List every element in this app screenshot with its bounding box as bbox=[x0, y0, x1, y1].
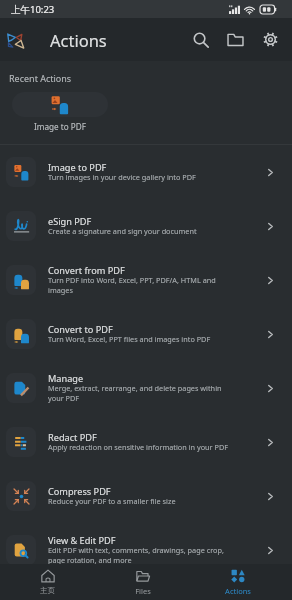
button[interactable]: Settings bbox=[253, 22, 288, 57]
staticText: Redact PDF bbox=[48, 431, 97, 444]
button[interactable]: Actions bbox=[190, 564, 285, 600]
staticText: 上午10:23 bbox=[11, 3, 55, 16]
staticText: View & Edit PDF bbox=[48, 534, 116, 547]
staticText: Image to PDF bbox=[48, 161, 107, 174]
button[interactable]: eSign PDF bbox=[0, 199, 292, 253]
staticText: Reduce your PDF to a smaller file size bbox=[48, 496, 176, 506]
button[interactable]: Manage bbox=[0, 361, 292, 415]
staticText: Image to PDF bbox=[34, 121, 87, 132]
button[interactable]: Convert to PDF bbox=[0, 307, 292, 361]
button[interactable]: Image to PDF bbox=[12, 92, 108, 132]
staticText: Files bbox=[135, 586, 151, 596]
button[interactable]: Adobe Acrobat home bbox=[3, 27, 29, 53]
button[interactable]: Search bbox=[183, 22, 218, 57]
staticText: Turn PDF into Word, Excel, PPT, PDF/A, H… bbox=[48, 275, 216, 285]
button[interactable]: Files bbox=[95, 564, 190, 600]
staticText: Compress PDF bbox=[48, 485, 111, 498]
button[interactable]: Files bbox=[218, 22, 253, 57]
staticText: Convert from PDF bbox=[48, 264, 125, 277]
staticText: Edit PDF with text, comments, drawings, … bbox=[48, 545, 224, 555]
staticText: Recent Actions bbox=[9, 72, 72, 84]
button[interactable]: Compress PDF bbox=[0, 469, 292, 523]
staticText: Turn Word, Excel, PPT files and images i… bbox=[48, 334, 211, 344]
button[interactable]: Convert from PDF bbox=[0, 253, 292, 307]
button[interactable]: Image to PDF bbox=[0, 145, 292, 199]
staticText: your PDF bbox=[48, 393, 80, 403]
staticText: eSign PDF bbox=[48, 215, 92, 228]
button[interactable]: View & Edit PDF bbox=[0, 523, 292, 577]
staticText: Merge, extract, rearrange, and delete pa… bbox=[48, 383, 222, 393]
staticText: Turn images in your device gallery into … bbox=[48, 172, 196, 182]
staticText: Apply redaction on sensitive information… bbox=[48, 442, 229, 452]
button[interactable]: 主页 bbox=[0, 564, 95, 600]
staticText: Create a signature and sign your documen… bbox=[48, 226, 197, 236]
button[interactable]: Redact PDF bbox=[0, 415, 292, 469]
staticText: Convert to PDF bbox=[48, 323, 113, 336]
staticText: Actions bbox=[225, 586, 251, 596]
staticText: Actions bbox=[50, 29, 107, 51]
staticText: page rotation, and more bbox=[48, 555, 132, 565]
staticText: 主页 bbox=[40, 586, 55, 595]
staticText: Manage bbox=[48, 372, 84, 385]
staticText: images bbox=[48, 285, 73, 295]
